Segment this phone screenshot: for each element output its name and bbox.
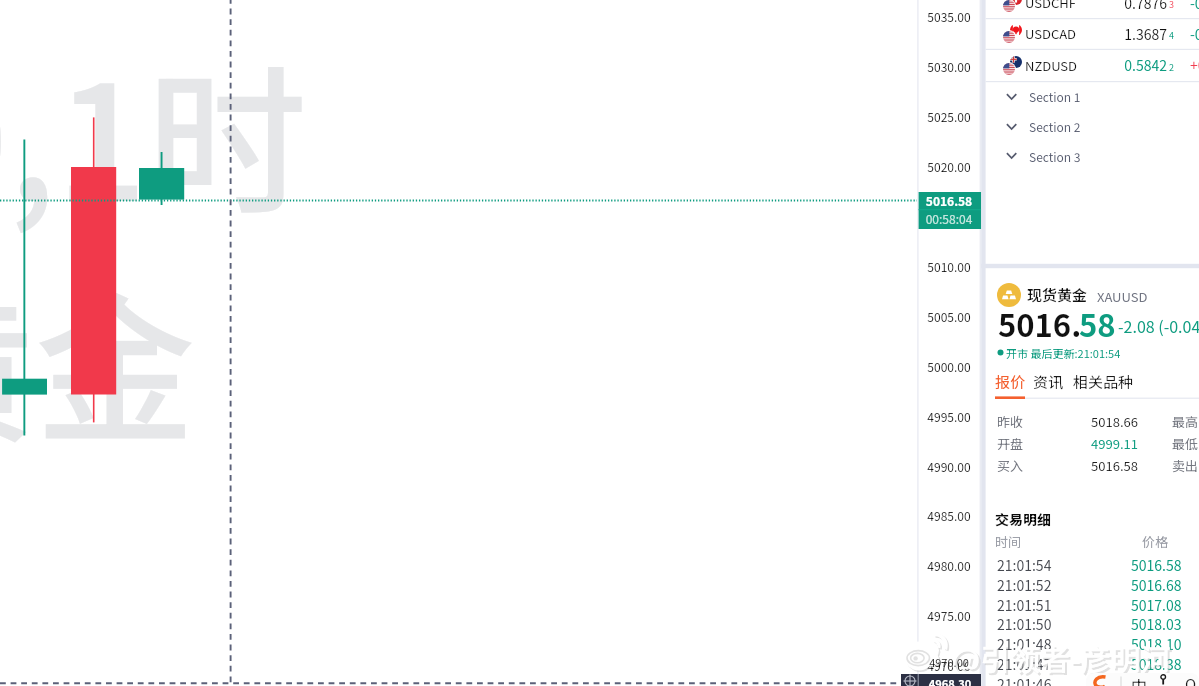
staticText: 00:58:04 (920, 210, 978, 227)
staticText: 开市 最后更新:21:01:54 (1006, 345, 1166, 361)
button[interactable] (986, 83, 1199, 113)
staticText: NZDUSD (1025, 56, 1115, 75)
staticText: @引领者-彦明河 (953, 638, 1199, 681)
staticText: 资讯 (1033, 371, 1073, 393)
staticText: 4 (1169, 29, 1181, 42)
staticText: 5000.00 (920, 358, 978, 375)
staticText: 2 (1169, 61, 1181, 74)
staticText: 5016.58 (920, 192, 978, 209)
staticText: @引领者-彦明河 (951, 636, 1199, 679)
staticText: Section 2 (1029, 118, 1149, 135)
staticText: +0 (1190, 55, 1199, 75)
staticText: -0 (1190, 0, 1199, 13)
staticText: 4970.00 (920, 657, 978, 674)
staticText: 4980.00 (920, 557, 978, 574)
staticText: 昨收 (997, 412, 1041, 431)
staticText: 5020.00 (920, 158, 978, 175)
staticText: 4968.30 (920, 675, 980, 686)
staticText: 5018.66 (1078, 412, 1138, 431)
staticText: 21:01:54 (997, 555, 1067, 575)
staticText: 最低 (1172, 434, 1199, 453)
staticText: 5030.00 (920, 58, 978, 75)
staticText: 价格 (1142, 532, 1182, 551)
staticText: 21:01:47 (997, 654, 1067, 674)
staticText: 21:01:51 (997, 595, 1067, 615)
staticText: 中 (1131, 673, 1151, 686)
staticText: USDCAD (1025, 24, 1115, 43)
staticText: 5017.08 (1131, 595, 1191, 615)
staticText: Section 1 (1029, 88, 1149, 105)
staticText: 5018.03 (1131, 614, 1191, 634)
button[interactable]: Crosshair price 4968.30 (901, 674, 981, 686)
staticText: 开盘 (997, 434, 1041, 453)
staticText: 4990.00 (920, 458, 978, 475)
button[interactable] (986, 51, 1199, 82)
staticText: 相关品种 (1073, 371, 1143, 393)
button[interactable] (986, 142, 1199, 172)
staticText: 21:01:52 (997, 575, 1067, 595)
staticText: XAUUSD (1097, 287, 1177, 306)
staticText: 21:01:48 (997, 634, 1067, 654)
button[interactable]: Input method toolbar (1086, 673, 1199, 686)
staticText: 4975.00 (920, 607, 978, 624)
staticText: 5018.10 (1131, 634, 1191, 654)
button[interactable] (1031, 369, 1067, 396)
staticText: 4985.00 (920, 507, 978, 524)
staticText: 4999.11 (1078, 434, 1138, 453)
staticText: 5016.58 (1078, 456, 1138, 475)
staticText: 5005.00 (920, 308, 978, 325)
staticText: 58 (1079, 301, 1129, 346)
staticText: 0.5842 (1107, 55, 1167, 75)
staticText: 时间 (995, 532, 1035, 551)
staticText: 5010.00 (920, 258, 978, 275)
staticText: 最高 (1172, 412, 1199, 431)
staticText: -2.08 (-0.04% (1118, 314, 1199, 337)
staticText: 0.7876 (1107, 0, 1167, 13)
staticText: 3 (1169, 0, 1181, 11)
staticText: 交易明细 (995, 509, 1075, 529)
staticText: 现货黄金 (1027, 284, 1097, 306)
staticText: 5025.00 (920, 108, 978, 125)
button[interactable] (1071, 369, 1133, 396)
staticText: 4995.00 (920, 408, 978, 425)
staticText: 0,1时 (0, 15, 537, 247)
staticText: 报价 (995, 371, 1035, 393)
button[interactable] (986, 113, 1199, 143)
staticText: 4970.00 (920, 654, 978, 670)
staticText: 5016.68 (1131, 575, 1191, 595)
staticText: 卖出 (1172, 456, 1199, 475)
staticText: 21:01:50 (997, 614, 1067, 634)
staticText: 1.3687 (1107, 24, 1167, 44)
button[interactable] (986, 0, 1199, 19)
button[interactable]: Candlestick chart (0, 0, 917, 686)
staticText: 5018.38 (1131, 654, 1191, 674)
staticText: 货黄金 (0, 243, 435, 475)
staticText: O (1185, 673, 1199, 686)
staticText: Section 3 (1029, 148, 1149, 165)
button[interactable] (993, 369, 1029, 396)
staticText: -0 (1190, 24, 1199, 44)
staticText: 21:01:46 (997, 674, 1067, 686)
staticText: 5016.58 (1131, 555, 1191, 575)
button[interactable] (986, 19, 1199, 50)
staticText: 5035.00 (920, 8, 978, 25)
staticText: 买入 (997, 456, 1041, 475)
staticText: 5016. (998, 301, 1088, 346)
staticText: USDCHF (1025, 0, 1115, 12)
